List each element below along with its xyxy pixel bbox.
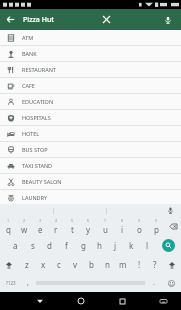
button[interactable]: BANK (0, 46, 181, 62)
staticText: HOSPITALS (22, 114, 51, 121)
button[interactable]: HOTEL (0, 126, 181, 142)
staticText: m (119, 259, 127, 270)
staticText: 1 (7, 218, 10, 223)
staticText: o (137, 224, 142, 235)
staticText: HOTEL (22, 130, 40, 137)
staticText: BANK (22, 50, 37, 57)
button[interactable]: 4 (48, 217, 64, 236)
button[interactable]: CAFE (0, 78, 181, 94)
staticText: q (6, 224, 11, 235)
staticText: b (89, 259, 94, 270)
button[interactable]: g (75, 236, 91, 255)
button[interactable]: 1 (0, 217, 16, 236)
button[interactable]: d (41, 236, 58, 255)
button[interactable]: ?123 (0, 274, 22, 292)
button[interactable]: BEAUTY SALON (0, 174, 181, 190)
staticText: 9 (138, 218, 141, 223)
button[interactable]: f (58, 236, 75, 255)
button[interactable]: Clear query (96, 9, 117, 30)
staticText: 7 (104, 218, 107, 223)
button[interactable]: Shift (0, 255, 18, 274)
staticText: TAXI STAND (22, 162, 53, 169)
button[interactable]: Space (34, 274, 147, 292)
staticText: g (81, 240, 86, 251)
button[interactable]: LAUNDRY (0, 190, 181, 204)
button[interactable]: s (24, 236, 41, 255)
button[interactable]: ATM (0, 30, 181, 46)
button[interactable]: x (35, 255, 51, 274)
button[interactable]: ? (147, 255, 163, 274)
button[interactable]: k (123, 236, 139, 255)
button[interactable]: Emoji (161, 274, 181, 292)
staticText: 6 (87, 218, 90, 223)
button[interactable]: Voice search (157, 9, 178, 30)
staticText: i (121, 224, 124, 235)
staticText: BUS STOP (22, 146, 48, 153)
button[interactable]: 7 (97, 217, 114, 236)
button[interactable]: j (107, 236, 123, 255)
staticText: a (13, 240, 18, 251)
button[interactable]: c (51, 255, 67, 274)
button[interactable]: b (83, 255, 99, 274)
button[interactable]: 5 (64, 217, 80, 236)
button[interactable]: HOSPITALS (0, 110, 181, 126)
button[interactable]: EDUCATION (0, 94, 181, 110)
staticText: y (86, 224, 91, 235)
staticText: 0 (155, 218, 158, 223)
button[interactable]: 6 (80, 217, 97, 236)
button[interactable]: 3 (32, 217, 48, 236)
staticText: j (114, 240, 117, 251)
button[interactable]: RESTAURANT (0, 62, 181, 78)
staticText: p (154, 224, 159, 235)
button[interactable]: Home (73, 293, 89, 309)
button[interactable]: z (18, 255, 35, 274)
staticText: ?123 (6, 280, 16, 286)
button[interactable]: a (7, 236, 24, 255)
staticText: 3 (39, 218, 42, 223)
staticText: u (103, 224, 108, 235)
button[interactable]: Navigate up (0, 9, 21, 30)
staticText: s (31, 240, 35, 251)
button[interactable]: Hide keyboard (155, 293, 171, 309)
button[interactable]: n (99, 255, 115, 274)
button[interactable]: . (147, 274, 161, 292)
button[interactable]: , (22, 274, 34, 292)
staticText: k (129, 240, 134, 251)
button[interactable]: 0 (148, 217, 165, 236)
staticText: n (105, 259, 110, 270)
staticText: h (97, 240, 102, 251)
staticText: x (41, 259, 46, 270)
staticText: ATM (22, 34, 34, 41)
button[interactable]: m (115, 255, 131, 274)
staticText: 8 (121, 218, 124, 223)
staticText: e (38, 224, 43, 235)
button[interactable]: h (91, 236, 107, 255)
button[interactable]: v (67, 255, 83, 274)
staticText: f (65, 240, 68, 251)
button[interactable]: Recent apps (114, 293, 130, 309)
button[interactable]: Shift (163, 255, 181, 274)
button[interactable]: ! (131, 255, 147, 274)
staticText: w (21, 224, 28, 235)
staticText: . (153, 278, 155, 288)
staticText: Pizza Hut (23, 15, 54, 25)
button[interactable]: TAXI STAND (0, 158, 181, 174)
button[interactable]: BUS STOP (0, 142, 181, 158)
button[interactable]: Search (155, 236, 181, 255)
button[interactable]: 8 (114, 217, 131, 236)
button[interactable]: 2 (16, 217, 32, 236)
staticText: d (47, 240, 52, 251)
staticText: LAUNDRY (22, 194, 48, 201)
staticText: CAFE (22, 82, 35, 89)
button[interactable]: Voice input (159, 204, 181, 217)
button[interactable]: Back (32, 293, 48, 309)
staticText: v (73, 259, 78, 270)
button[interactable]: Backspace (165, 217, 181, 236)
button[interactable]: 9 (131, 217, 148, 236)
button[interactable]: l (139, 236, 155, 255)
staticText: l (146, 240, 149, 251)
staticText: ? (153, 259, 157, 270)
